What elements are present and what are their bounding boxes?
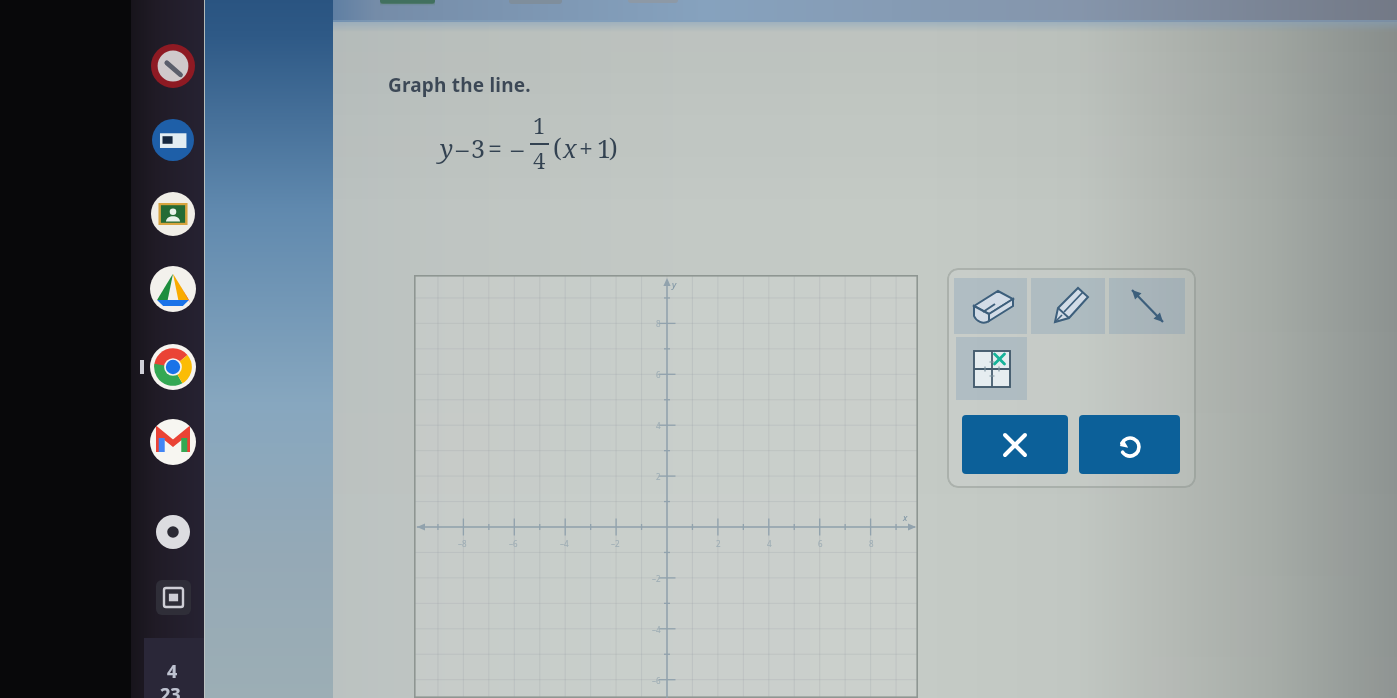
staticText: 4 bbox=[656, 420, 661, 431]
button[interactable]: Settings bbox=[156, 515, 190, 549]
staticText: –2 bbox=[611, 538, 620, 549]
staticText: –6 bbox=[652, 675, 661, 686]
staticText: –4 bbox=[560, 538, 569, 549]
staticText: 23 bbox=[160, 682, 181, 698]
staticText: Graph the line. bbox=[388, 72, 531, 98]
staticText: 4 bbox=[533, 145, 546, 175]
staticText: 6 bbox=[656, 369, 661, 380]
button[interactable]: Pencil bbox=[1031, 278, 1105, 334]
button[interactable]: Chrome bbox=[150, 344, 196, 390]
staticText: 6 bbox=[818, 538, 823, 549]
staticText: 8 bbox=[656, 318, 661, 329]
staticText: 1 bbox=[597, 131, 611, 165]
staticText: ) bbox=[609, 130, 618, 164]
button[interactable]: Coordinate plane bbox=[414, 275, 918, 698]
staticText: 3 bbox=[471, 131, 485, 165]
button[interactable]: Gmail bbox=[150, 419, 196, 465]
button[interactable]: Undo bbox=[1079, 415, 1180, 474]
staticText: y bbox=[440, 131, 454, 165]
button[interactable]: Meet bbox=[152, 119, 194, 161]
staticText: –6 bbox=[509, 538, 518, 549]
button[interactable]: Shortcut bbox=[151, 44, 195, 88]
staticText: ( bbox=[553, 130, 562, 164]
staticText: 4 bbox=[167, 659, 178, 684]
staticText: –8 bbox=[458, 538, 467, 549]
button[interactable]: Plot point bbox=[956, 337, 1027, 400]
staticText: –4 bbox=[652, 624, 661, 635]
staticText: x bbox=[563, 131, 577, 165]
button[interactable]: Drive bbox=[150, 266, 196, 312]
staticText: – bbox=[456, 131, 469, 165]
button[interactable]: Clear bbox=[962, 415, 1068, 474]
button[interactable]: Draw line bbox=[1109, 278, 1185, 334]
staticText: – bbox=[511, 131, 524, 165]
staticText: –2 bbox=[652, 573, 661, 584]
staticText: y bbox=[672, 278, 677, 290]
staticText: 8 bbox=[869, 538, 874, 549]
staticText: 2 bbox=[716, 538, 721, 549]
button[interactable]: Apps bbox=[156, 580, 191, 615]
button[interactable]: Classroom bbox=[151, 192, 195, 236]
button[interactable]: Eraser bbox=[954, 278, 1027, 334]
staticText: = bbox=[488, 131, 502, 165]
staticText: 2 bbox=[656, 471, 661, 482]
staticText: 1 bbox=[533, 110, 546, 140]
staticText: + bbox=[579, 131, 593, 165]
staticText: 4 bbox=[767, 538, 772, 549]
staticText: x bbox=[903, 511, 908, 523]
